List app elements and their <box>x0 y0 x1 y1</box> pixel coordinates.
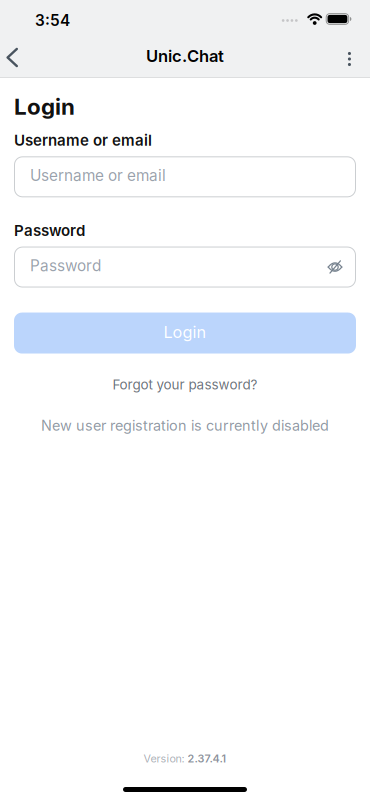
staticText: Password <box>30 258 101 276</box>
staticText: 3:54 <box>35 11 70 30</box>
staticText: Password <box>30 256 101 275</box>
button[interactable]: More options <box>329 37 370 78</box>
staticText: Username or email <box>30 168 166 186</box>
staticText: Forgot your password? <box>112 377 257 393</box>
textField[interactable]: Username or email <box>30 168 340 186</box>
staticText: Version: <box>143 752 187 765</box>
staticText: Login <box>163 322 206 342</box>
staticText: Username or email <box>30 166 166 185</box>
staticText: Login <box>14 93 75 120</box>
button[interactable]: Back <box>0 38 32 77</box>
button[interactable]: Login <box>14 313 356 354</box>
button[interactable]: Forgot your password? <box>112 373 257 397</box>
button[interactable]: Show password <box>315 247 355 287</box>
staticText: Unic.Chat <box>146 46 224 66</box>
textField[interactable]: Password <box>30 258 312 276</box>
staticText: New user registration is currently disab… <box>41 417 329 434</box>
staticText: Password <box>14 221 85 239</box>
staticText: 2.37.4.1 <box>187 752 226 765</box>
staticText: Username or email <box>14 131 152 149</box>
